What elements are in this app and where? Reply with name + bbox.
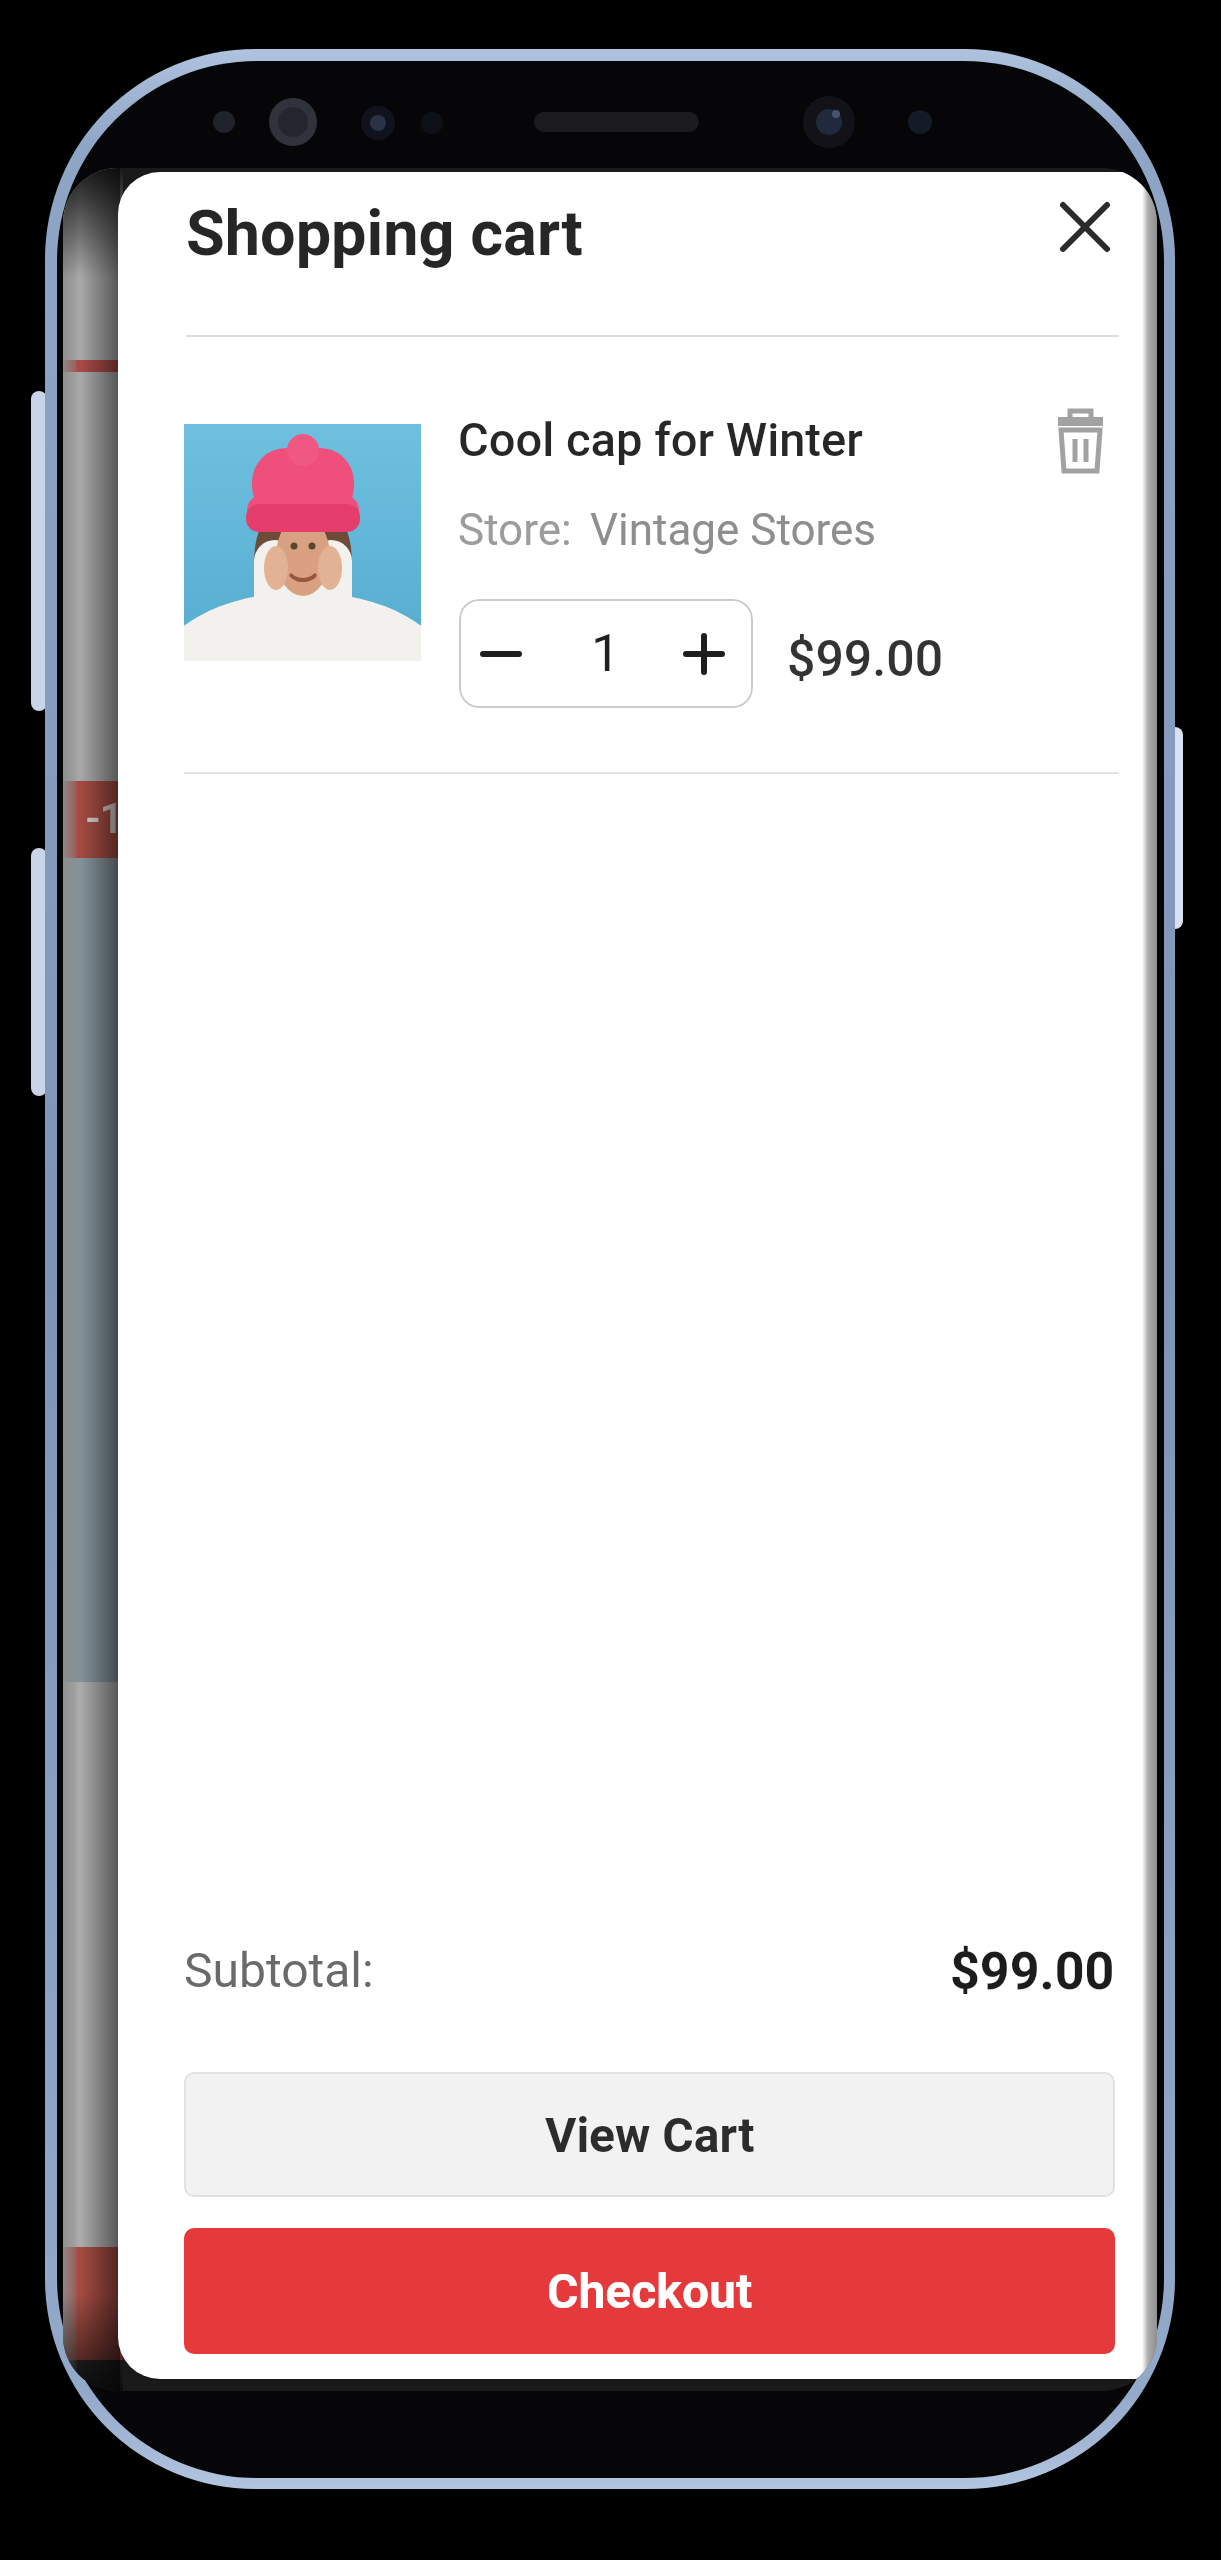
- staticText: Shopping cart: [186, 197, 583, 271]
- button[interactable]: Checkout: [184, 2228, 1115, 2354]
- button[interactable]: [1045, 187, 1125, 267]
- button[interactable]: [1044, 398, 1116, 482]
- staticText: 1: [591, 623, 621, 684]
- staticText: View Cart: [545, 2107, 755, 2163]
- button[interactable]: [655, 599, 753, 708]
- staticText: $99.00: [787, 630, 944, 689]
- button[interactable]: [459, 599, 557, 708]
- staticText: Store:: [458, 504, 572, 556]
- staticText: $99.00: [950, 1941, 1115, 2002]
- staticText: Vintage Stores: [590, 504, 877, 556]
- button[interactable]: View Cart: [184, 2072, 1115, 2197]
- staticText: Checkout: [547, 2263, 753, 2319]
- staticText: Cool cap for Winter: [458, 412, 863, 467]
- staticText: Subtotal:: [184, 1942, 374, 1998]
- staticText: -15: [86, 794, 148, 843]
